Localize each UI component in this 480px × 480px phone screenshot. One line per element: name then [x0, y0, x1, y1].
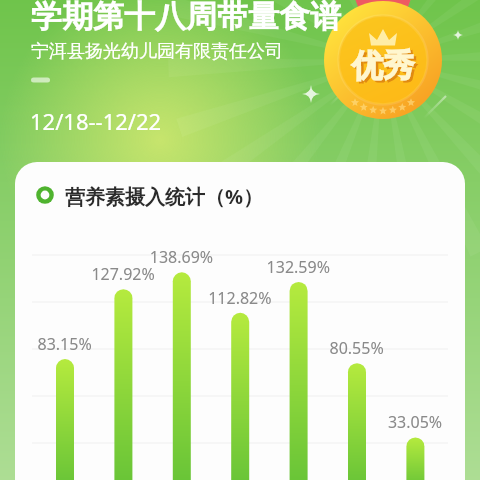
button[interactable] — [24, 0, 354, 70]
button[interactable]: 营养素 80.55% — [340, 335, 374, 480]
button[interactable]: 营养素 112.82% — [223, 285, 257, 480]
button[interactable]: 营养素 127.92% — [106, 261, 140, 480]
button[interactable]: 营养素 138.69% — [165, 244, 199, 480]
button[interactable]: 营养素 33.05% — [398, 409, 432, 480]
button[interactable]: 营养素 83.15% — [48, 331, 82, 480]
button[interactable] — [24, 100, 174, 136]
button[interactable]: 优秀奖章 — [324, 0, 442, 119]
button[interactable] — [28, 176, 328, 212]
button[interactable]: 营养素 132.59% — [282, 254, 316, 480]
